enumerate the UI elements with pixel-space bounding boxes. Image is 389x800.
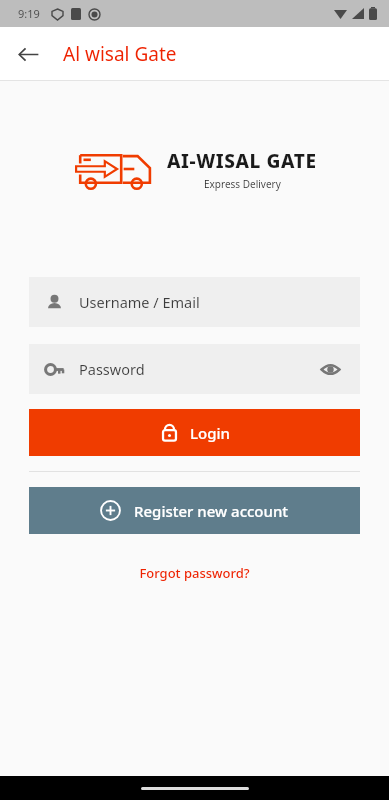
- staticText: Al wisal Gate: [63, 41, 177, 67]
- button[interactable]: Password: [29, 344, 360, 394]
- staticText: Login: [190, 423, 230, 443]
- button[interactable]: Show password: [316, 355, 344, 383]
- staticText: AI-WISAL GATE: [167, 148, 317, 174]
- staticText: Username / Email: [79, 292, 200, 312]
- button[interactable]: Login: [29, 409, 360, 456]
- staticText: Express Delivery: [204, 177, 281, 191]
- button[interactable]: Back: [8, 34, 48, 74]
- staticText: Password: [79, 359, 145, 379]
- staticText: Register new account: [134, 501, 289, 521]
- button[interactable]: Username / Email: [29, 277, 360, 327]
- staticText: 9:19: [18, 6, 40, 21]
- button[interactable]: Register new account: [29, 487, 360, 534]
- button[interactable]: Forgot password?: [0, 560, 389, 586]
